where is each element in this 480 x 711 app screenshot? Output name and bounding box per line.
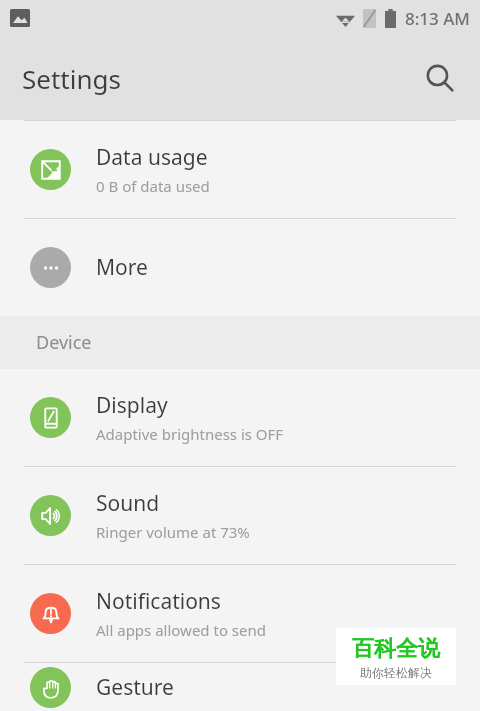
- staticText: Sound: [96, 489, 160, 518]
- staticText: Gesture: [96, 673, 174, 702]
- button[interactable]: Sound: [0, 467, 480, 564]
- staticText: Device: [36, 330, 92, 355]
- staticText: Notifications: [96, 587, 221, 616]
- staticText: Settings: [22, 61, 121, 96]
- button[interactable]: More: [0, 219, 480, 316]
- staticText: Display: [96, 391, 168, 420]
- staticText: Ringer volume at 73%: [96, 522, 250, 542]
- button[interactable]: Data usage: [0, 121, 480, 218]
- staticText: 8:13 AM: [405, 7, 470, 30]
- staticText: 助你轻松解决: [360, 665, 432, 680]
- staticText: More: [96, 253, 148, 282]
- staticText: 百科全说: [352, 635, 440, 663]
- button[interactable]: Gesture: [0, 663, 480, 711]
- button[interactable]: Notifications: [0, 565, 480, 662]
- staticText: All apps allowed to send: [96, 620, 267, 640]
- button[interactable]: Display: [0, 369, 480, 466]
- staticText: 0 B of data used: [96, 176, 210, 196]
- button[interactable]: Search: [416, 54, 464, 102]
- staticText: Adaptive brightness is OFF: [96, 424, 284, 444]
- staticText: Data usage: [96, 143, 208, 172]
